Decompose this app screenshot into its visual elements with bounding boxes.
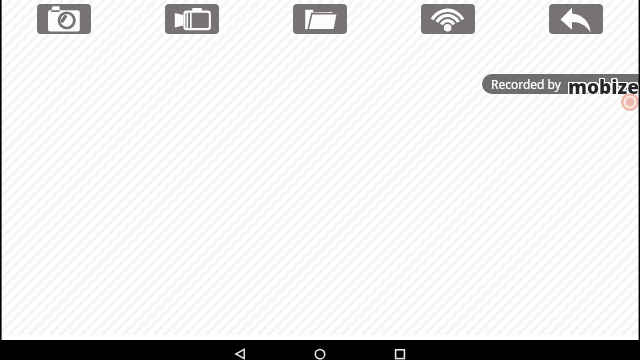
button[interactable]: Recent apps	[376, 340, 424, 360]
button[interactable]: Home	[296, 340, 344, 360]
button[interactable]: Record video	[165, 4, 219, 34]
button[interactable]: Back	[549, 4, 603, 34]
staticText: mobizen	[568, 74, 640, 94]
staticText: mobizen	[567, 74, 640, 94]
staticText: mobizen	[568, 74, 640, 93]
staticText: mobizen	[569, 74, 640, 94]
staticText: mobizen	[569, 75, 640, 94]
button[interactable]: Back	[216, 340, 264, 360]
staticText: Recorded by	[491, 76, 561, 92]
button[interactable]: Files	[293, 4, 347, 34]
staticText: mobizen	[567, 74, 640, 93]
staticText: mobizen	[567, 75, 640, 94]
staticText: mobizen	[568, 75, 640, 94]
button[interactable]: Live broadcast	[421, 4, 475, 34]
button[interactable]: Camera	[37, 4, 91, 34]
staticText: mobizen	[569, 74, 640, 93]
